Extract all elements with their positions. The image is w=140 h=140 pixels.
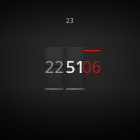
button[interactable]: Time 22:51:06 — [0, 0, 140, 140]
button[interactable]: Flip clock watch face — [0, 0, 140, 140]
